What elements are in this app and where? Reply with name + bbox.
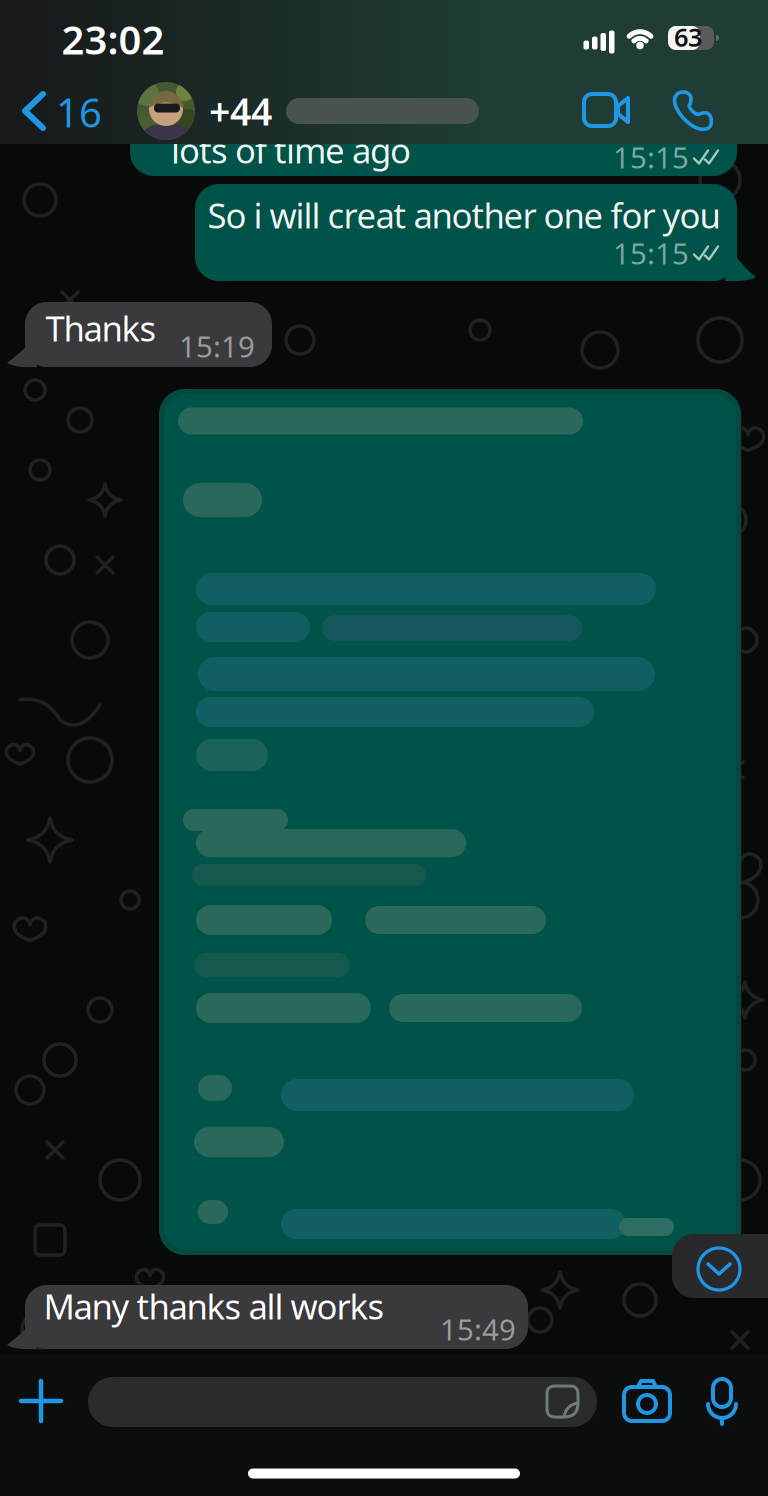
button[interactable]: Stickers [546,1385,580,1419]
staticText: 15:19 [179,326,255,365]
staticText: Many thanks all works [43,1283,384,1329]
staticText: So i will creat another one for you [207,192,720,238]
button[interactable]: Call [668,88,716,132]
button[interactable]: Attach [21,1381,61,1421]
button[interactable]: Contact info [137,80,479,142]
staticText: 15:49 [440,1309,516,1348]
staticText: 15:15 [613,233,689,272]
staticText: 15:15 [613,137,689,176]
staticText: +44 [209,86,272,136]
button[interactable]: Camera [623,1380,675,1422]
staticText: 63 [674,20,702,54]
button[interactable]: Back [23,90,103,134]
button[interactable]: Scroll to bottom [693,1243,745,1295]
button[interactable]: Voice message [707,1378,737,1424]
staticText: 16 [56,85,102,138]
staticText: 23:02 [61,12,164,65]
button[interactable]: Message [88,1377,597,1427]
button[interactable]: Video call [581,90,637,130]
staticText: Thanks [45,305,156,351]
staticText: lots of time ago [171,127,411,173]
